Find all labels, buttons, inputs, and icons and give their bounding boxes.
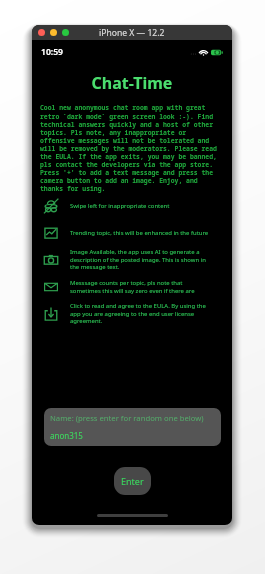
staticText: Enter — [121, 475, 144, 487]
staticText: Click to read and agree to the EULA. By … — [70, 302, 210, 325]
staticText: iPhone X — 12.2 — [99, 27, 165, 39]
staticText: Image Available, the app uses AI to gene… — [70, 248, 210, 271]
button[interactable]: Enter — [114, 467, 151, 495]
staticText: Cool new anonymous chat room app with gr… — [40, 103, 217, 192]
button[interactable]: Name: (press enter for random one below) — [44, 408, 221, 446]
staticText: Messsage counts per topic, pls note that… — [70, 279, 210, 295]
staticText: Swipe left for inappropriate content — [70, 202, 210, 210]
staticText: 10:59 — [41, 46, 64, 58]
staticText: anon315 — [50, 430, 83, 441]
staticText: Name: (press enter for random one below) — [50, 413, 204, 423]
staticText: Chat-Time — [32, 72, 232, 94]
staticText: Trending topic, this will be enhanced in… — [70, 229, 210, 237]
